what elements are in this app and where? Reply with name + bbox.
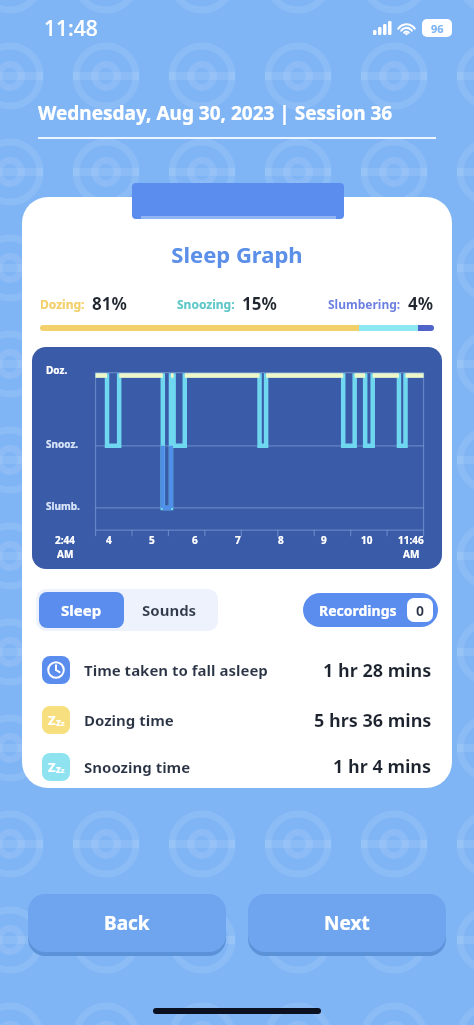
other: Dozing time	[42, 706, 70, 734]
other: Time taken to fall asleep	[42, 656, 70, 684]
button[interactable]: Sounds	[124, 592, 215, 628]
staticText: Slumb.	[46, 499, 80, 513]
staticText: Slumbering:	[328, 296, 401, 312]
button[interactable]: Dozing time	[22, 695, 452, 745]
button[interactable]: Snoozing time	[22, 745, 452, 788]
staticText: Sleep Graph	[22, 239, 452, 269]
staticText: 9	[321, 533, 327, 547]
staticText: 1 hr 28 mins	[323, 658, 432, 683]
staticText: Dozing time	[84, 710, 174, 730]
staticText: z	[61, 719, 65, 729]
staticText: 1 hr 4 mins	[333, 754, 432, 779]
staticText: Recordings	[319, 601, 397, 620]
staticText: Snoozing:	[177, 296, 235, 312]
staticText: 6	[192, 533, 198, 547]
staticText: 5	[149, 533, 155, 547]
staticText: 0	[416, 601, 425, 620]
staticText: Sleep	[61, 600, 102, 620]
staticText: Doz.	[46, 363, 68, 377]
staticText: 11:46	[398, 533, 424, 547]
button[interactable]: Next	[248, 894, 446, 952]
staticText: 96	[431, 21, 444, 36]
staticText: Dozing:	[40, 296, 85, 312]
staticText: 4%	[408, 292, 434, 315]
staticText: 2:44	[55, 533, 75, 547]
other: Snoozing time	[42, 753, 70, 781]
button[interactable]: Back	[28, 894, 226, 952]
staticText: Z	[48, 758, 56, 776]
staticText: z	[56, 762, 61, 776]
staticText: Snooz.	[46, 437, 79, 451]
staticText: 7	[235, 533, 241, 547]
staticText: AM	[403, 547, 420, 561]
staticText: 11:48	[44, 14, 98, 43]
staticText: Z	[48, 711, 56, 729]
staticText: Sounds	[142, 600, 197, 620]
staticText: 10	[361, 533, 373, 547]
staticText: Snoozing time	[84, 757, 191, 777]
button[interactable]: Time taken to fall asleep	[22, 645, 452, 695]
staticText: z	[61, 766, 65, 776]
staticText: 8	[278, 533, 284, 547]
staticText: AM	[57, 547, 74, 561]
staticText: z	[56, 715, 61, 729]
staticText: Back	[104, 910, 150, 936]
staticText: Time taken to fall asleep	[84, 660, 268, 680]
button[interactable]: Sleep	[39, 592, 124, 628]
staticText: 4	[106, 533, 112, 547]
staticText: Wednesday, Aug 30, 2023 | Session 36	[38, 100, 393, 126]
staticText: 81%	[92, 292, 127, 315]
staticText: 15%	[242, 292, 277, 315]
button[interactable]: Recordings	[303, 593, 438, 627]
staticText: Next	[324, 910, 370, 936]
staticText: 5 hrs 36 mins	[314, 708, 432, 733]
